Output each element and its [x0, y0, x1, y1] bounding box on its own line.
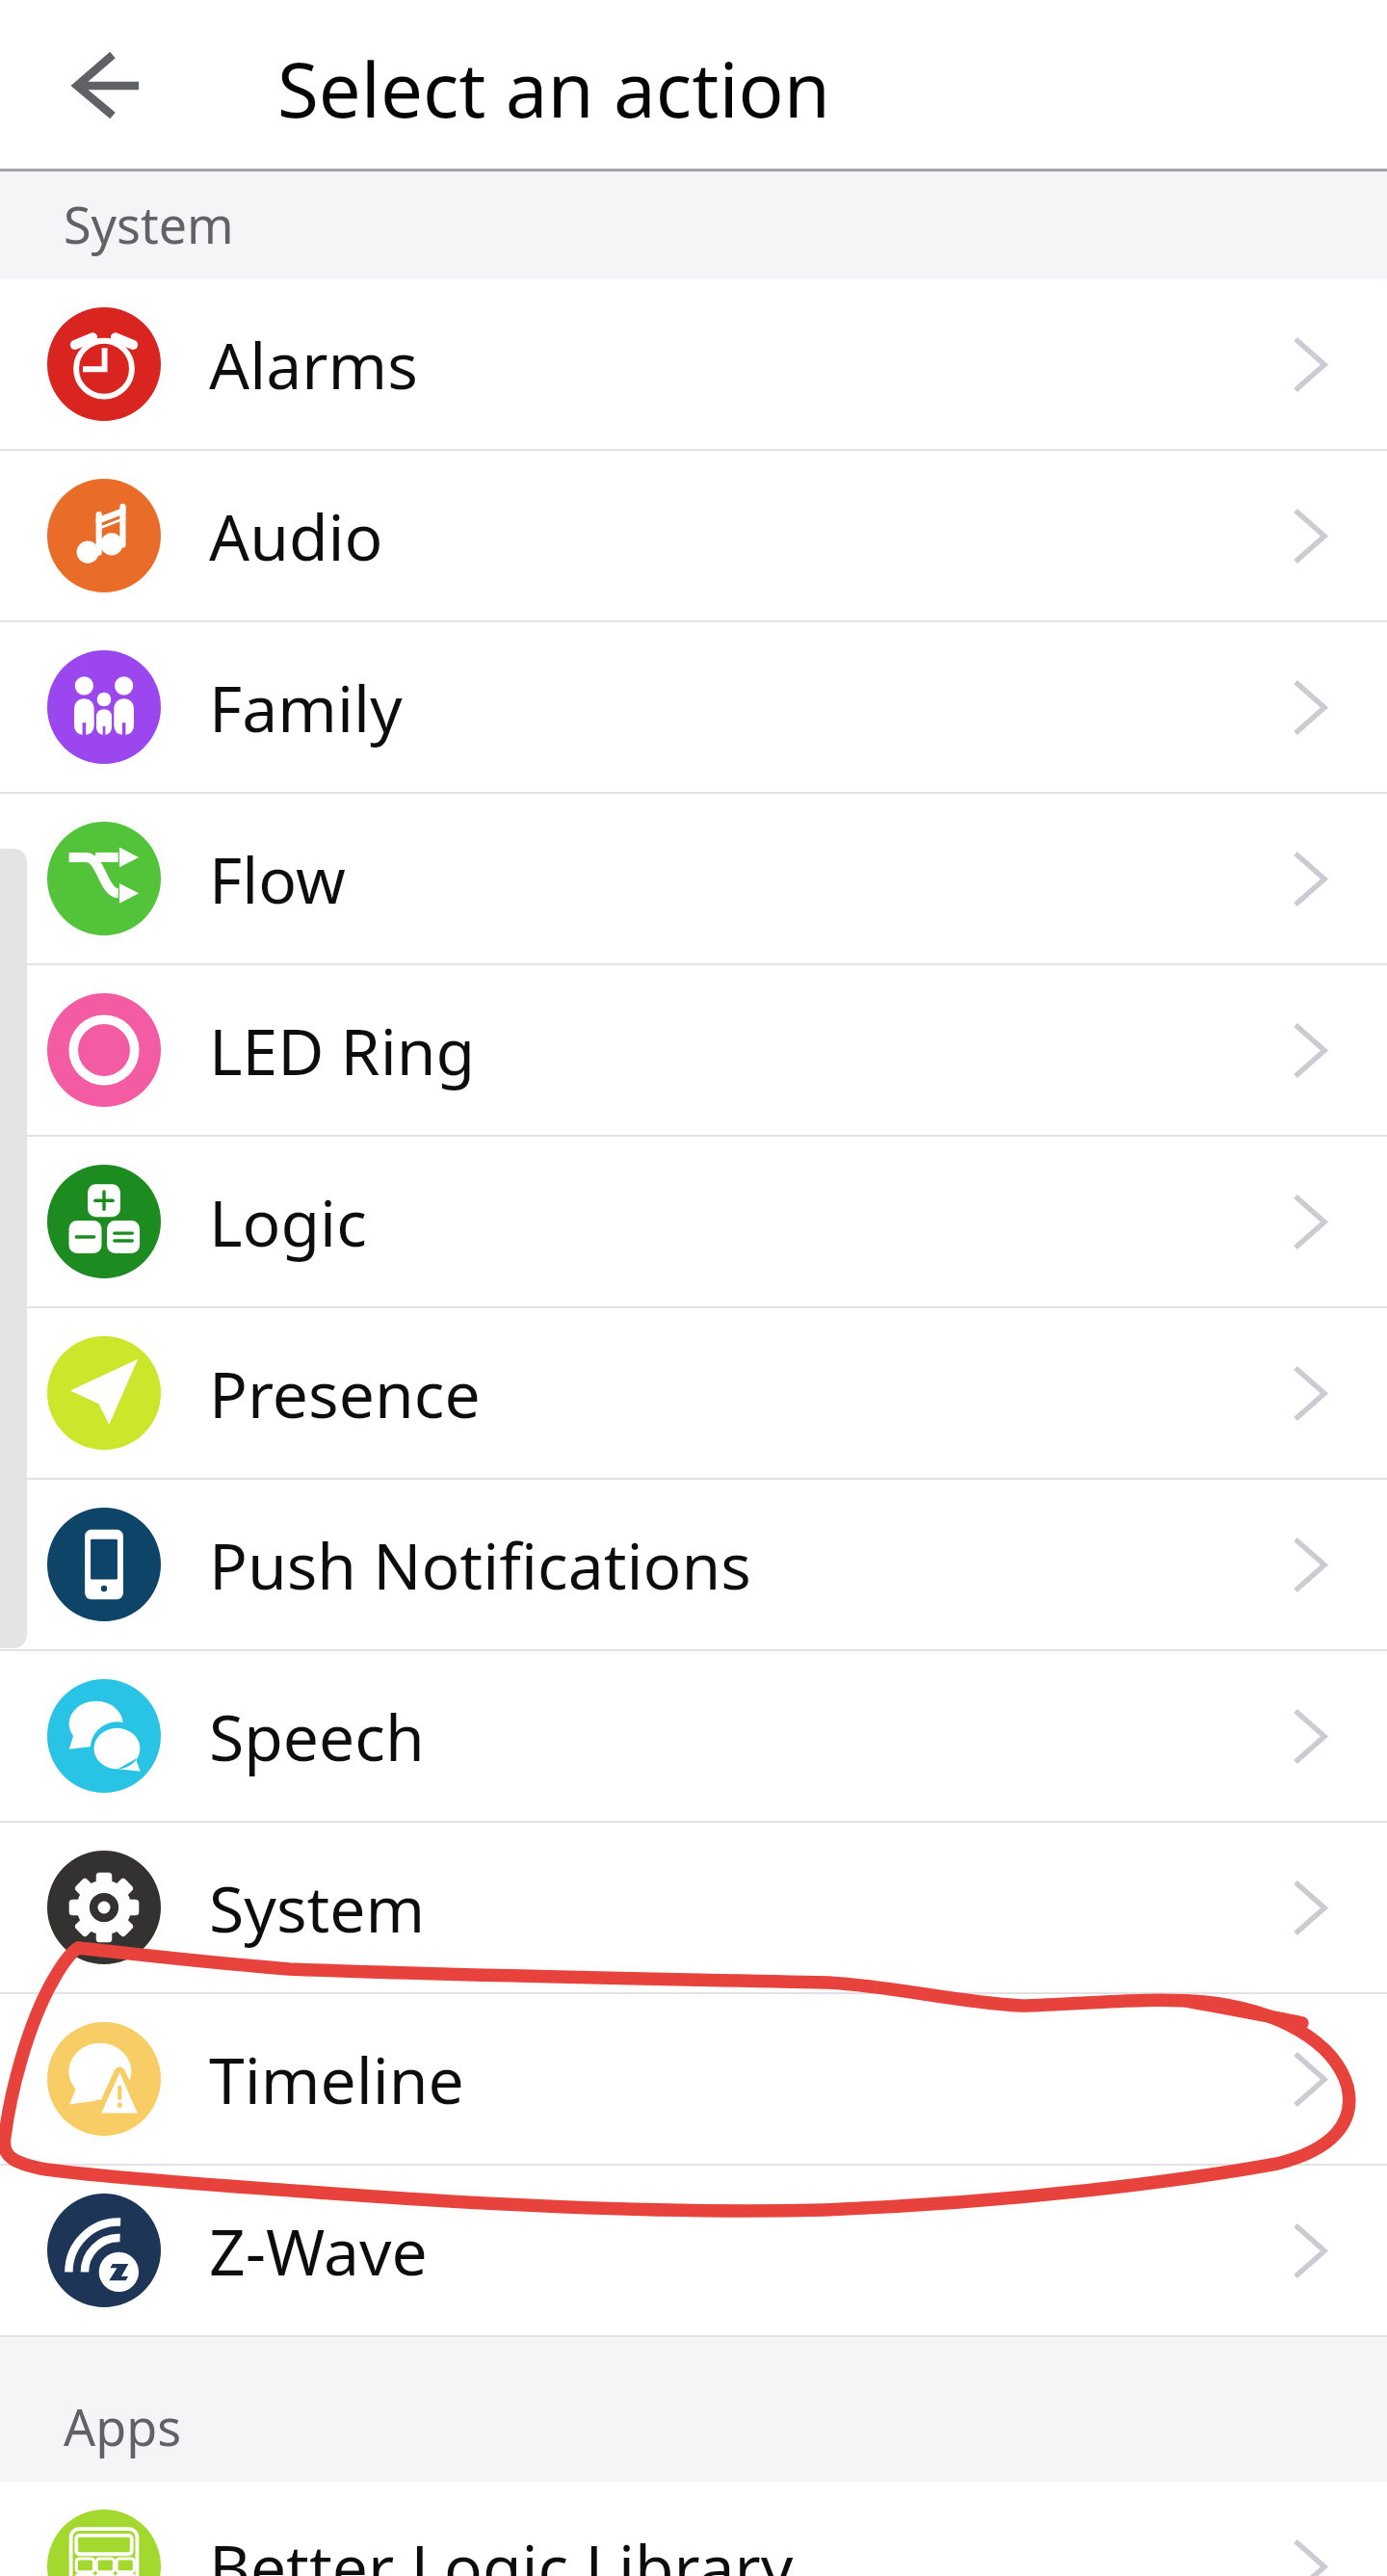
staticText: Presence [209, 1350, 1294, 1436]
staticText: System [64, 190, 234, 258]
button[interactable]: Timeline [0, 1994, 1387, 2166]
button[interactable]: Push Notifications [0, 1480, 1387, 1651]
button[interactable]: System [0, 1823, 1387, 1994]
button[interactable]: LED Ring [0, 965, 1387, 1137]
button[interactable]: Z-Wave [0, 2166, 1387, 2337]
staticText: Family [209, 664, 1294, 750]
button[interactable]: Back [23, 23, 148, 148]
staticText: Timeline [209, 2036, 1294, 2122]
button[interactable]: Better Logic Library [0, 2482, 1387, 2576]
staticText: Speech [209, 1693, 1294, 1779]
button[interactable]: Flow [0, 794, 1387, 965]
staticText: Flow [209, 835, 1294, 922]
staticText: System [209, 1864, 1294, 1951]
staticText: Better Logic Library [209, 2523, 1294, 2576]
button[interactable]: Alarms [0, 279, 1387, 451]
staticText: LED Ring [209, 1007, 1294, 1093]
staticText: Apps [64, 2392, 182, 2460]
button[interactable]: Speech [0, 1651, 1387, 1823]
staticText: Alarms [209, 321, 1294, 407]
staticText: Logic [209, 1178, 1294, 1265]
button[interactable]: Audio [0, 451, 1387, 622]
button[interactable]: Logic [0, 1137, 1387, 1308]
staticText: Select an action [277, 38, 830, 140]
staticText: Audio [209, 492, 1294, 579]
staticText: Push Notifications [209, 1521, 1294, 1608]
button[interactable]: Family [0, 622, 1387, 794]
staticText: Z-Wave [209, 2207, 1294, 2294]
button[interactable]: Presence [0, 1308, 1387, 1480]
